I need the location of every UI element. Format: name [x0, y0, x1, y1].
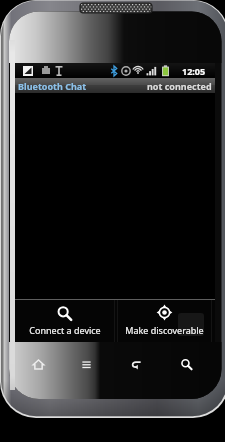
button[interactable]: Menu: [80, 358, 93, 371]
button[interactable]: Search: [180, 358, 193, 371]
staticText: 12:05: [182, 65, 206, 77]
staticText: not connected: [147, 80, 212, 92]
button[interactable]: Connect a device: [15, 300, 114, 342]
staticText: Bluetooth Chat: [18, 80, 87, 92]
button[interactable]: Back: [130, 358, 143, 371]
staticText: Make discoverable: [125, 324, 204, 336]
staticText: Connect a device: [29, 324, 101, 336]
button[interactable]: Make discoverable: [117, 300, 211, 342]
button[interactable]: Home: [32, 358, 45, 371]
